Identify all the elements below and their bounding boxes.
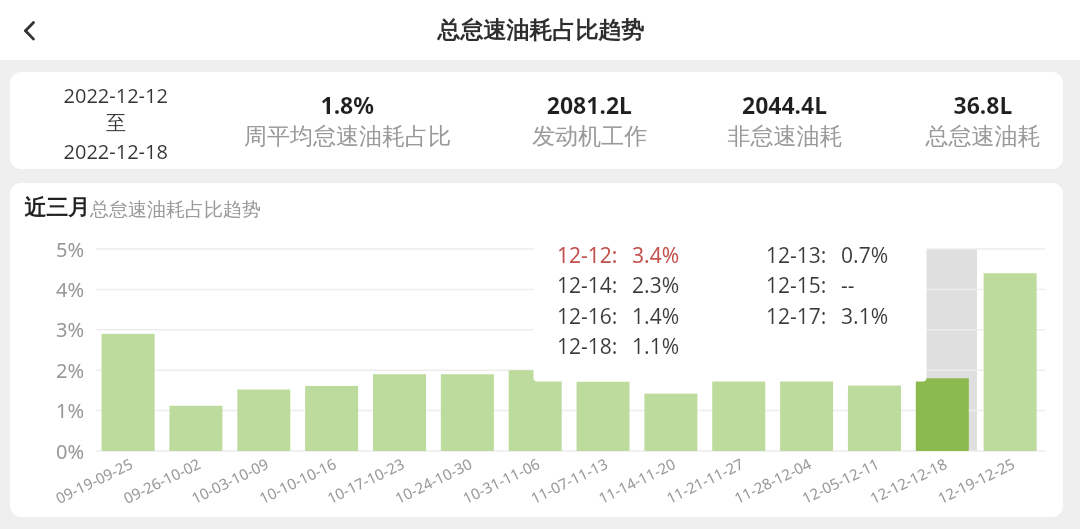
button[interactable] [10,72,1063,169]
button[interactable] [10,72,242,169]
staticText: 近三月 [24,194,90,222]
button[interactable] [866,72,1063,169]
staticText: 总怠速油耗占比趋势 [437,16,644,45]
button[interactable]: 12-12-12-18 周数据 [916,249,969,451]
button[interactable] [242,72,474,169]
button[interactable] [474,72,670,169]
button[interactable]: Back [6,6,54,54]
button[interactable]: 近三月 [24,194,261,222]
staticText: 总怠速油耗占比趋势 [90,198,261,222]
button[interactable] [670,72,866,169]
